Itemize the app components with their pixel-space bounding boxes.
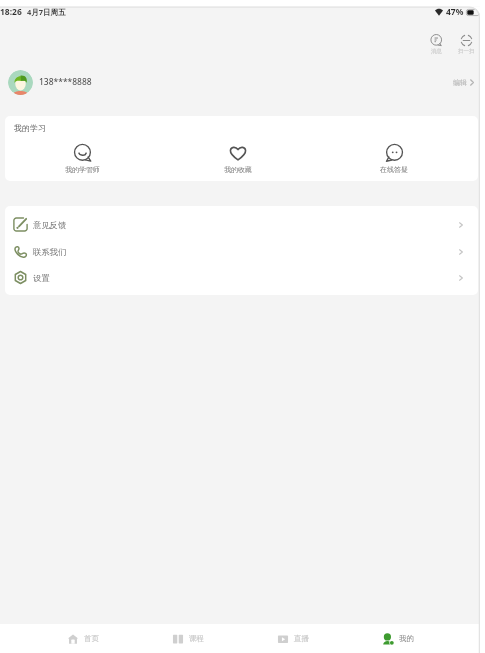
staticText: 编辑 [453, 78, 467, 87]
staticText: 首页 [84, 634, 99, 643]
button[interactable]: 首页 [30, 624, 135, 653]
staticText: 意见反馈 [33, 220, 67, 230]
staticText: 直播 [294, 634, 309, 643]
button[interactable]: 联系我们 [5, 238, 478, 265]
button[interactable]: 直播 [240, 624, 345, 653]
staticText: 扫一扫 [458, 48, 475, 55]
button[interactable]: 课程 [135, 624, 240, 653]
staticText: 我的 [399, 634, 414, 643]
button[interactable]: 我的 [345, 624, 450, 653]
staticText: 我的学管师 [65, 165, 100, 174]
staticText: 在线答疑 [380, 165, 408, 174]
staticText: 138****8888 [39, 76, 92, 88]
button[interactable]: Messages [428, 31, 445, 58]
staticText: 47% [446, 6, 464, 18]
staticText: 设置 [33, 273, 50, 283]
staticText: 课程 [189, 634, 204, 643]
staticText: 联系我们 [33, 247, 67, 257]
staticText: 消息 [431, 48, 442, 55]
button[interactable]: Scan [456, 31, 477, 58]
button[interactable]: 意见反馈 [5, 211, 478, 238]
button[interactable]: 我的学管师 [5, 144, 160, 174]
button[interactable]: 设置 [5, 265, 478, 290]
staticText: 我的收藏 [224, 165, 252, 174]
button[interactable]: 138****8888 [0, 58, 480, 106]
staticText: 我的学习 [14, 123, 46, 133]
button[interactable]: 我的收藏 [160, 144, 316, 174]
staticText: 18:26 [0, 6, 22, 18]
button[interactable]: 在线答疑 [316, 144, 472, 174]
staticText: 4月7日周五 [27, 7, 66, 17]
